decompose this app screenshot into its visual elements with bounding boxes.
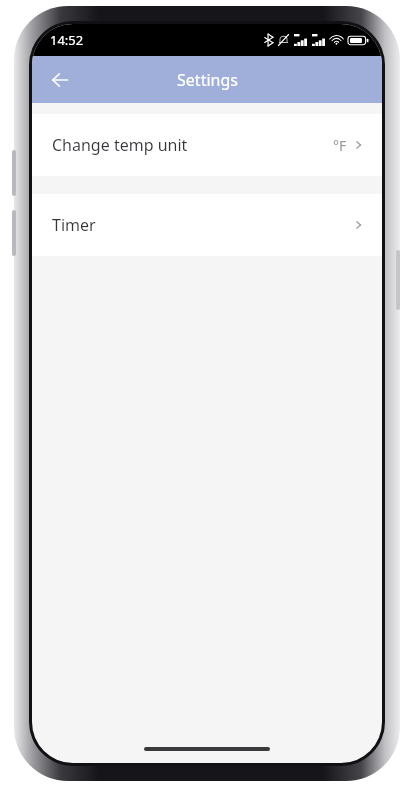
button[interactable]: Change temp unit <box>32 114 382 176</box>
staticText: Change temp unit <box>52 134 188 156</box>
staticText: °F <box>333 136 347 155</box>
staticText: 14:52 <box>50 31 84 49</box>
button[interactable]: Back <box>40 60 80 100</box>
staticText: Timer <box>52 214 96 236</box>
button[interactable]: Timer <box>32 194 382 256</box>
staticText: Settings <box>177 69 238 91</box>
